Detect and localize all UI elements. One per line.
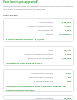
staticText: Foreclosure is applicable after 6 months… — [6, 85, 71, 91]
staticText: EMI — [6, 49, 53, 52]
button[interactable]: Late payment fee — [6, 79, 71, 83]
staticText: Loan amount — [6, 21, 53, 24]
button[interactable]: Foreclosure charges — [6, 71, 71, 75]
button[interactable]: Processing fee — [6, 28, 71, 32]
staticText: 6,250 — [56, 53, 71, 56]
staticText: Advance interest deducted — [6, 53, 53, 56]
button[interactable]: Loan amount — [6, 20, 71, 24]
staticText: 2.5% — [56, 72, 71, 75]
staticText: Late payment fee — [6, 80, 53, 83]
button[interactable]: Advance interest deducted — [6, 52, 71, 56]
staticText: Your loan is pre-approved! — [3, 0, 38, 4]
staticText: 10,747 — [56, 49, 71, 52]
staticText: Tenure — [6, 33, 53, 36]
button[interactable]: Tenure — [6, 32, 71, 36]
staticText: Part payment charges — [6, 76, 53, 79]
staticText: Total Payable Amount : 6,44,820 — [8, 38, 45, 41]
button[interactable]: EMI — [6, 48, 71, 52]
staticText: 2,500 — [56, 29, 71, 32]
button[interactable]: Amount to be disbursed — [6, 56, 71, 60]
staticText: 24 months — [56, 33, 71, 36]
button[interactable]: Interest rate per month — [6, 24, 71, 28]
staticText: Foreclosure charges — [6, 72, 53, 75]
staticText: Loan Details — [3, 13, 18, 16]
staticText: 4,91,250 — [56, 57, 71, 60]
staticText: Interest rate per month — [6, 25, 53, 28]
staticText: 1.25% — [56, 25, 71, 28]
staticText: 75,000 — [56, 97, 71, 99]
staticText: 5,00,000 — [56, 21, 71, 24]
staticText: Processing fee — [6, 29, 53, 32]
staticText: 500 — [56, 80, 71, 83]
staticText: Nil — [56, 76, 71, 79]
staticText: Check the details below and register to … — [3, 5, 74, 11]
button[interactable]: Part payment charges — [6, 75, 71, 79]
button[interactable]: Monthly income — [6, 97, 71, 99]
staticText: Monthly income — [6, 97, 53, 99]
staticText: Amount to be disbursed — [6, 57, 53, 60]
staticText: Available in your bank in 24 hrs — [6, 62, 42, 65]
